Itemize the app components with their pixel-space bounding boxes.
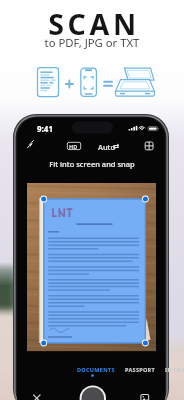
button[interactable]: PASSPORT xyxy=(125,366,155,373)
button[interactable]: DOCUMENTS xyxy=(77,366,115,373)
button[interactable]: ID CARD xyxy=(165,366,184,373)
staticText: SCAN xyxy=(2,5,184,44)
staticText: Auto xyxy=(98,142,116,152)
staticText: HD xyxy=(69,143,78,150)
staticText: ⇄ xyxy=(113,142,120,151)
staticText: Fit into screen and snap xyxy=(0,159,184,169)
staticText: 9:41 xyxy=(37,123,53,134)
staticText: to PDF, JPG or TXT xyxy=(0,35,184,50)
